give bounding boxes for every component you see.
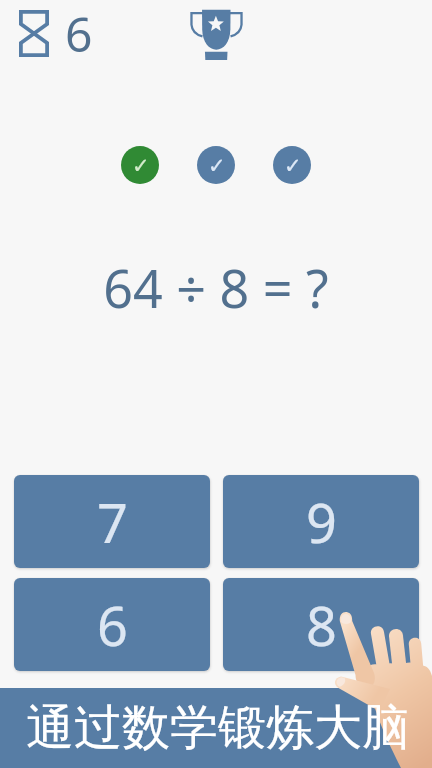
button[interactable]: 7 bbox=[14, 475, 210, 568]
button[interactable]: Trophy bbox=[189, 7, 244, 60]
staticText: ✓ bbox=[208, 154, 226, 178]
staticText: 6 bbox=[65, 1, 93, 66]
staticText: ✓ bbox=[284, 154, 302, 178]
button[interactable]: 6 bbox=[14, 578, 210, 671]
button[interactable]: progress bbox=[273, 146, 311, 184]
staticText: 9 bbox=[306, 485, 337, 559]
button[interactable]: progress bbox=[197, 146, 235, 184]
button[interactable]: Lives remaining bbox=[19, 1, 93, 66]
button[interactable]: 9 bbox=[223, 475, 419, 568]
staticText: 64 ÷ 8 = ? bbox=[103, 252, 329, 323]
button[interactable]: 8 bbox=[223, 578, 419, 671]
staticText: ✓ bbox=[132, 154, 150, 178]
staticText: 6 bbox=[97, 588, 128, 662]
staticText: 7 bbox=[97, 485, 128, 559]
staticText: 通过数学锻炼大脑 bbox=[26, 698, 410, 758]
staticText: 8 bbox=[306, 588, 337, 662]
button[interactable]: progress bbox=[121, 146, 159, 184]
